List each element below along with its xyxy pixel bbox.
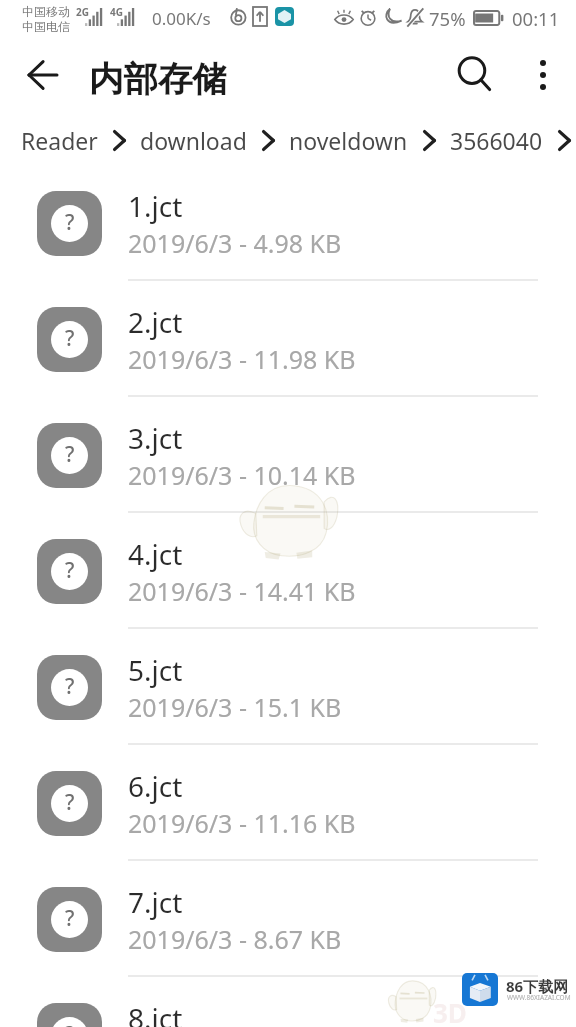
button[interactable]: Back [14, 40, 71, 110]
staticText: noveldown [289, 125, 408, 156]
button[interactable]: More options [519, 40, 566, 110]
button[interactable]: ? [0, 977, 576, 1027]
staticText: ? [65, 672, 75, 701]
staticText: download [140, 125, 247, 156]
button[interactable]: ? [0, 513, 576, 629]
staticText: WWW.86XIAZAI.COM [507, 993, 571, 1002]
staticText: ? [65, 440, 75, 469]
staticText: Reader [21, 125, 98, 156]
button[interactable]: 3566040 [450, 113, 543, 168]
staticText: 3.jct [128, 419, 183, 457]
button[interactable]: ? [0, 397, 576, 513]
staticText: ? [65, 788, 75, 817]
staticText: 2.jct [128, 303, 183, 341]
staticText: ? [65, 904, 75, 933]
staticText: 2019/6/3 - 11.16 KB [128, 806, 356, 840]
staticText: 中国电信 [22, 19, 70, 34]
staticText: 3566040 [450, 125, 543, 156]
staticText: 2019/6/3 - 4.98 KB [128, 226, 342, 260]
staticText: 1.jct [128, 187, 183, 225]
staticText: 内部存储 [89, 58, 227, 101]
staticText: 2019/6/3 - 15.1 KB [128, 690, 342, 724]
button[interactable]: ? [0, 629, 576, 745]
staticText: 7.jct [128, 883, 183, 921]
staticText: 5.jct [128, 651, 183, 689]
staticText: 2019/6/3 - 14.41 KB [128, 574, 356, 608]
button[interactable]: ? [0, 745, 576, 861]
staticText: 6.jct [128, 767, 183, 805]
button[interactable]: Search [446, 40, 502, 110]
staticText: 0.00K/s [152, 7, 211, 30]
staticText: 00:11 [512, 6, 560, 31]
staticText: 2019/6/3 - 10.14 KB [128, 458, 356, 492]
staticText: 4.jct [128, 535, 183, 573]
button[interactable]: ? [0, 165, 576, 281]
button[interactable]: download [140, 113, 247, 168]
staticText: 2019/6/3 - 8.67 KB [128, 922, 342, 956]
staticText: ? [65, 1020, 75, 1027]
button[interactable]: ? [0, 861, 576, 977]
staticText: 8.jct [128, 999, 183, 1027]
staticText: ? [65, 324, 75, 353]
button[interactable]: noveldown [289, 113, 408, 168]
staticText: 中国移动 [22, 4, 70, 19]
button[interactable]: ? [0, 281, 576, 397]
staticText: 75% [429, 6, 466, 31]
staticText: 86下载网 [506, 976, 569, 996]
staticText: ? [65, 556, 75, 585]
staticText: 2019/6/3 - 11.98 KB [128, 342, 356, 376]
staticText: 4G [110, 5, 123, 19]
staticText: 2G [76, 5, 89, 19]
staticText: ? [65, 208, 75, 237]
button[interactable]: Reader [21, 113, 98, 168]
staticText: 3D [433, 995, 467, 1027]
